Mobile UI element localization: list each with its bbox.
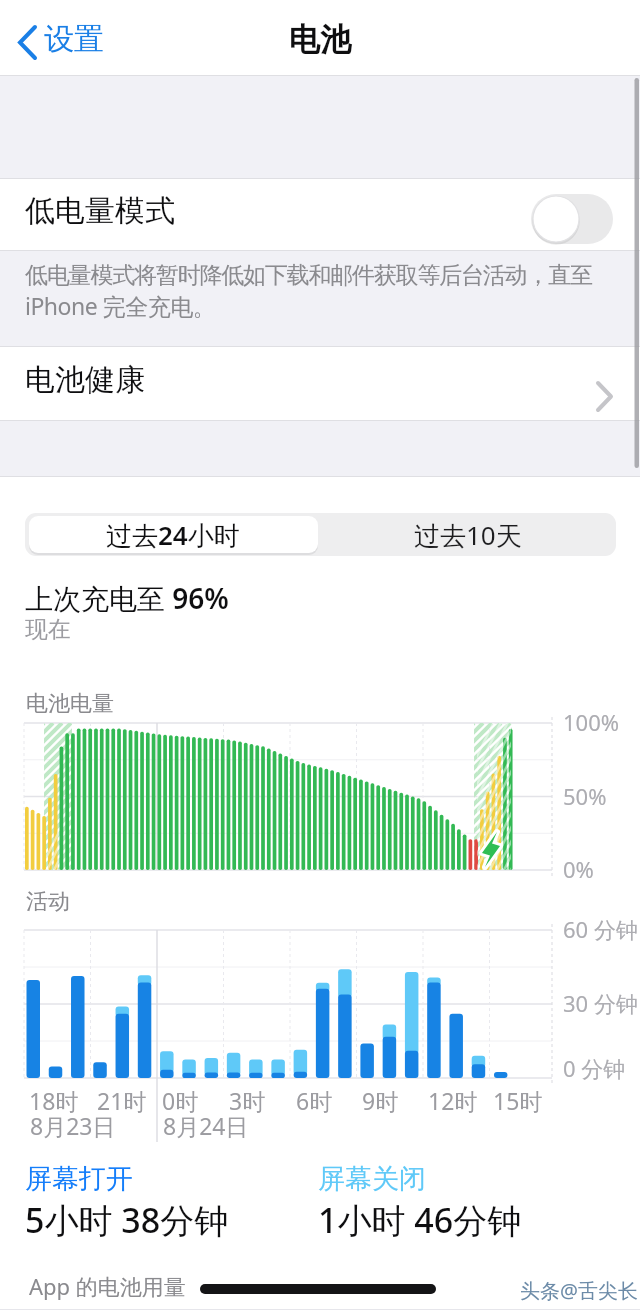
button[interactable] [0,178,640,250]
staticText: 30 分钟 [563,988,638,1018]
staticText: 18时 [29,1085,79,1116]
staticText: 活动 [26,888,70,916]
staticText: App 的电池用量 [29,1271,186,1301]
button[interactable] [10,14,120,70]
staticText: 6时 [296,1085,333,1116]
staticText: 现在 [25,615,71,644]
staticText: 过去10天 [414,517,522,553]
staticText: 0时 [162,1085,199,1116]
staticText: 15时 [493,1085,543,1116]
staticText: 8月24日 [163,1110,249,1141]
staticText: 电池健康 [25,361,145,399]
staticText: 0% [563,854,594,884]
staticText: 设置 [44,20,104,58]
staticText: 屏幕关闭 [318,1162,426,1196]
staticText: 100% [563,707,620,737]
staticText: 过去24小时 [106,517,240,553]
button[interactable]: 过去10天 [320,513,616,556]
staticText: 0 分钟 [563,1053,626,1083]
staticText: 头条@舌尖长 [520,1277,638,1304]
staticText: 3时 [229,1085,266,1116]
staticText: iPhone 完全充电。 [25,290,216,321]
button[interactable]: 过去24小时 [25,513,320,556]
staticText: 电池 [289,20,351,59]
staticText: 1小时 46分钟 [318,1197,522,1243]
staticText: 电池电量 [26,690,114,718]
staticText: 12时 [428,1085,478,1116]
staticText: 9时 [362,1085,399,1116]
staticText: 屏幕打开 [25,1162,133,1196]
staticText: 50% [563,781,607,811]
staticText: 上次充电至 96% [25,579,229,617]
staticText: 低电量模式将暂时降低如下载和邮件获取等后台活动，直至 [25,261,592,290]
staticText: 低电量模式 [25,192,175,230]
button[interactable] [0,346,640,420]
staticText: 8月23日 [30,1110,116,1141]
staticText: 60 分钟 [563,914,638,944]
staticText: 5小时 38分钟 [25,1197,229,1243]
staticText: 21时 [97,1085,147,1116]
